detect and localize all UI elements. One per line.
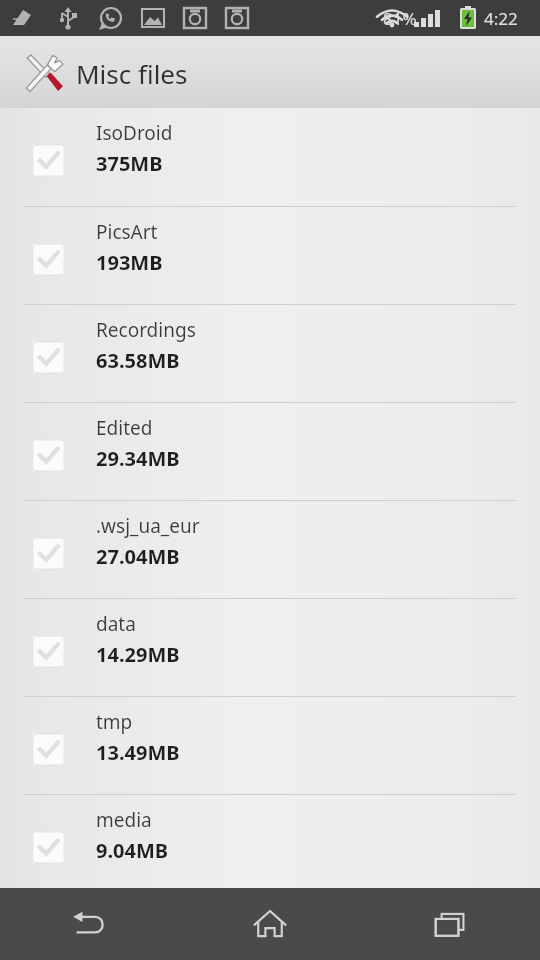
button[interactable]: Select PicsArt <box>32 243 65 276</box>
button[interactable]: Select Edited <box>0 403 540 500</box>
staticText: media <box>96 807 152 833</box>
staticText: 193MB <box>96 249 163 276</box>
button[interactable]: Select tmp <box>0 697 540 794</box>
button[interactable]: Select media <box>0 795 540 888</box>
button[interactable]: Select data <box>0 599 540 696</box>
button[interactable]: Select Recordings <box>32 341 65 374</box>
button[interactable]: Back <box>0 888 180 960</box>
staticText: 4:22 <box>484 7 518 30</box>
staticText: data <box>96 611 136 637</box>
button[interactable]: Select data <box>32 635 65 668</box>
button[interactable]: Select tmp <box>32 733 65 766</box>
staticText: 81% <box>383 7 417 30</box>
button[interactable]: Select Edited <box>32 439 65 472</box>
staticText: Misc files <box>76 56 188 91</box>
button[interactable]: Select IsoDroid <box>0 108 540 206</box>
button[interactable]: Select IsoDroid <box>32 144 65 177</box>
staticText: tmp <box>96 709 133 735</box>
staticText: 14.29MB <box>96 641 180 668</box>
button[interactable]: Select media <box>32 831 65 864</box>
staticText: Edited <box>96 415 153 441</box>
button[interactable]: Select Recordings <box>0 305 540 402</box>
button[interactable]: Select .wsj_ua_eur <box>32 537 65 570</box>
staticText: PicsArt <box>96 219 158 245</box>
staticText: 9.04MB <box>96 837 169 864</box>
staticText: 29.34MB <box>96 445 180 472</box>
staticText: 63.58MB <box>96 347 180 374</box>
button[interactable]: Recent apps <box>360 888 540 960</box>
button[interactable]: Home <box>180 888 360 960</box>
staticText: 375MB <box>96 150 163 177</box>
button[interactable]: Select .wsj_ua_eur <box>0 501 540 598</box>
staticText: 27.04MB <box>96 543 180 570</box>
staticText: .wsj_ua_eur <box>96 513 200 539</box>
staticText: IsoDroid <box>96 120 173 146</box>
staticText: 13.49MB <box>96 739 180 766</box>
staticText: Recordings <box>96 317 196 343</box>
button[interactable]: Select PicsArt <box>0 207 540 304</box>
